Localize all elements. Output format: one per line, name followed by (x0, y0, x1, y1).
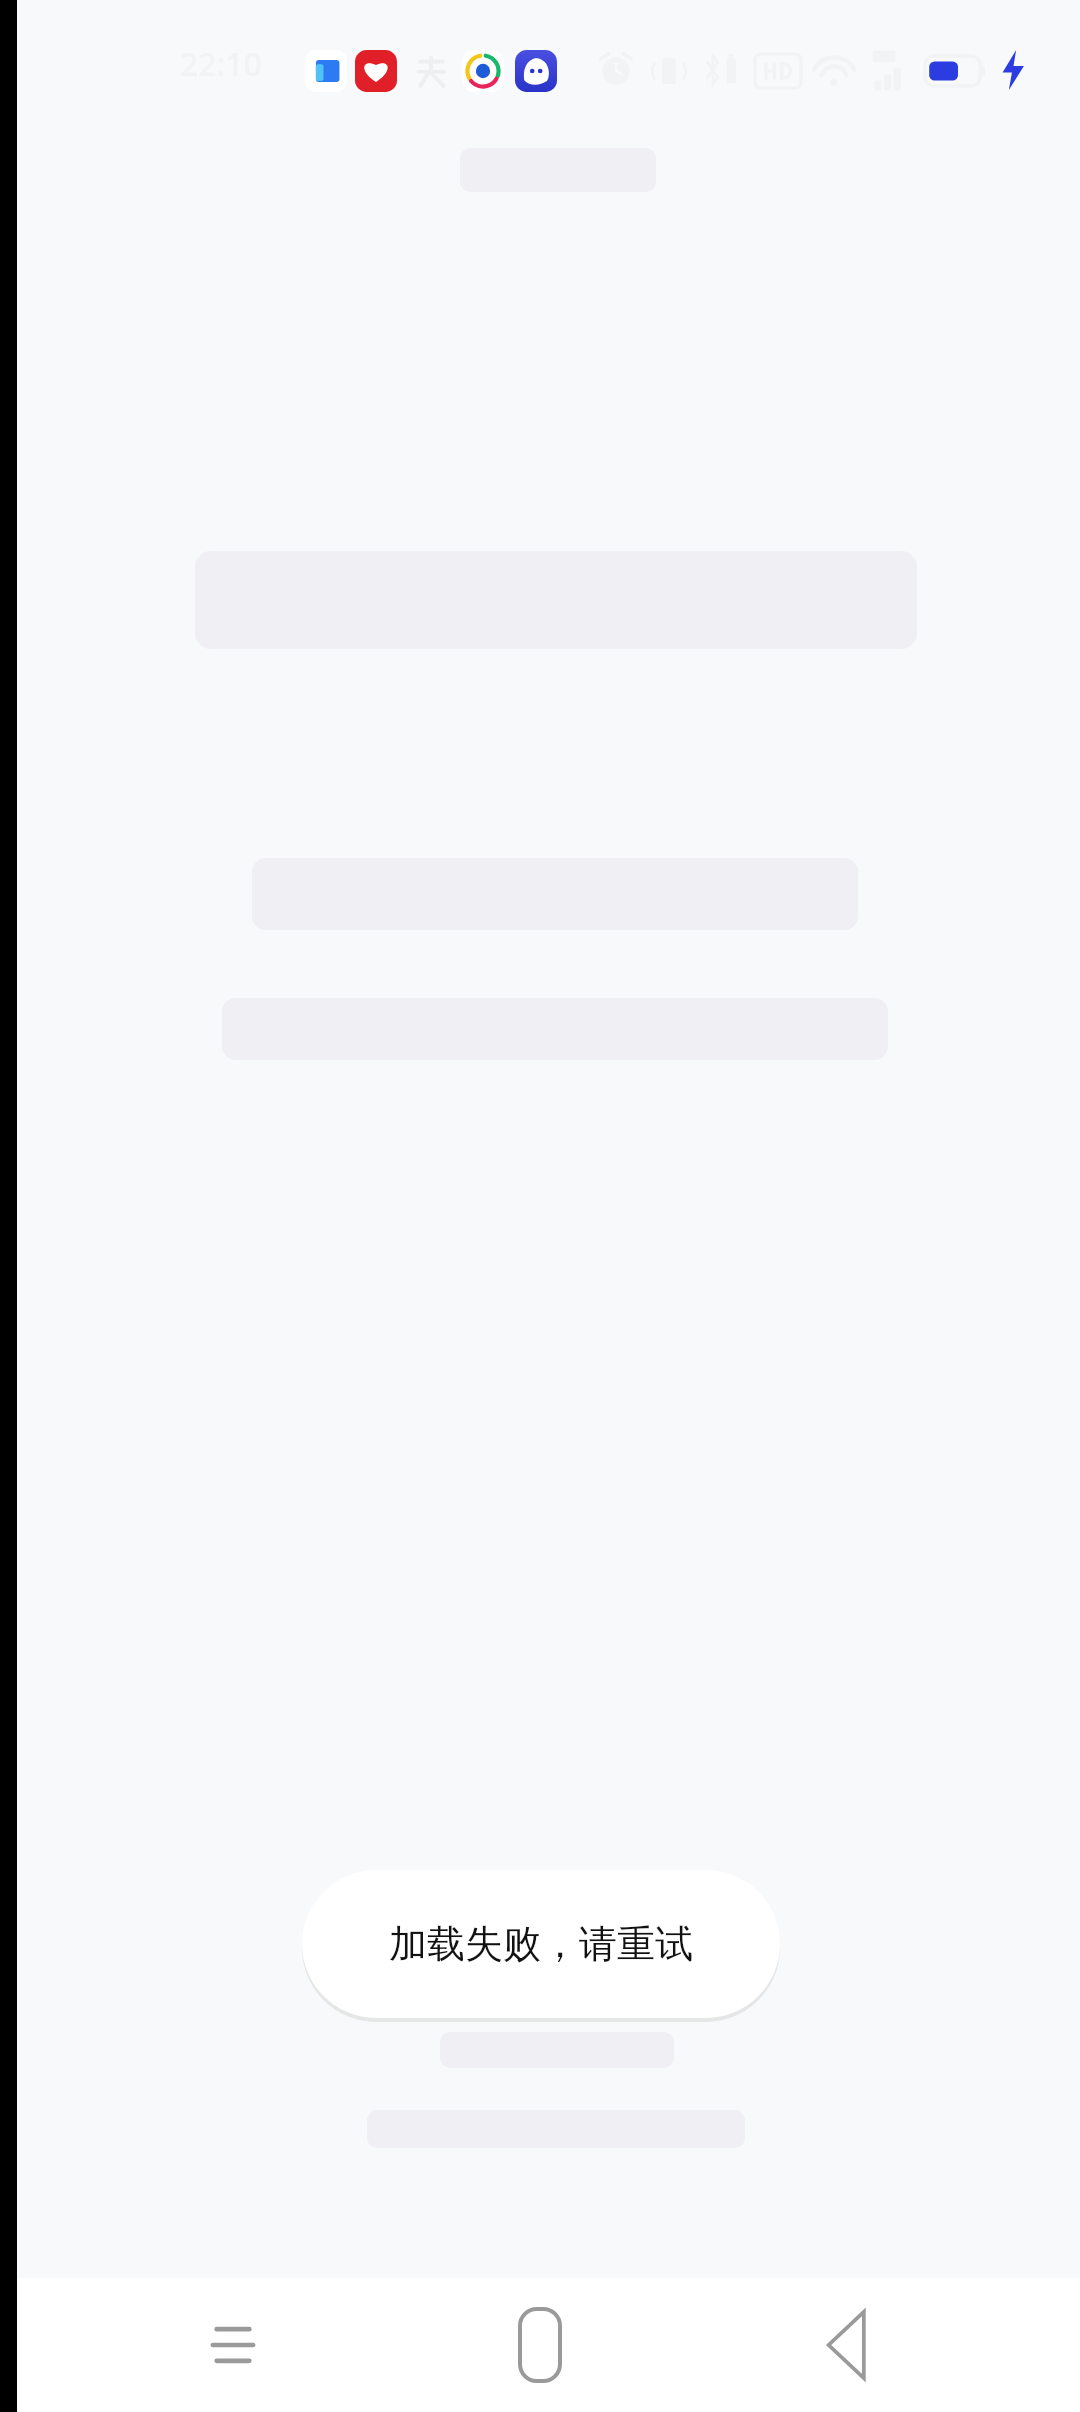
button[interactable]: Recent apps (158, 2278, 308, 2412)
button[interactable]: Back (773, 2278, 923, 2412)
button[interactable]: 加载失败，请重试 (302, 1870, 780, 2018)
button[interactable]: Home (465, 2278, 615, 2412)
staticText: 加载失败，请重试 (389, 1920, 693, 1968)
